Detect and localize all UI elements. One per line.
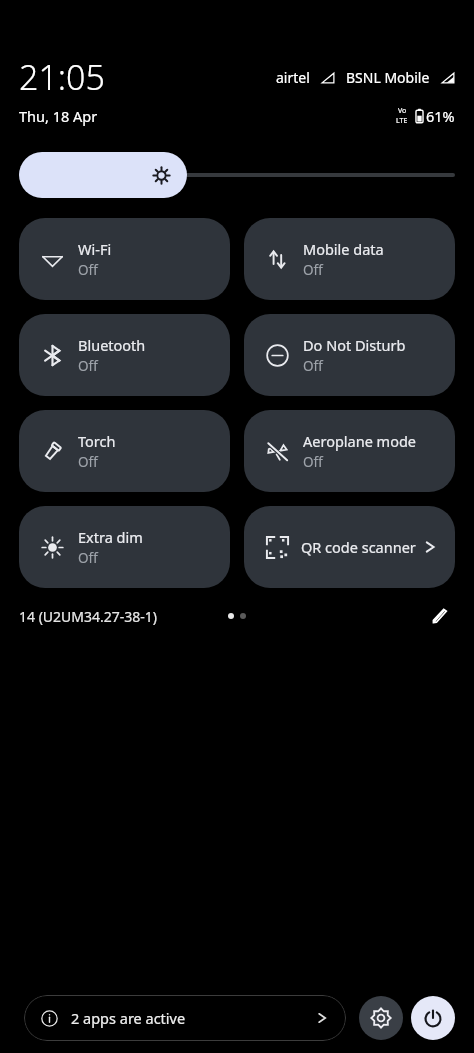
button[interactable]: 2 apps are active <box>24 995 346 1041</box>
staticText: Do Not Disturb <box>303 335 406 355</box>
staticText: 2 apps are active <box>71 1008 314 1028</box>
staticText: 14 (U2UM34.27-38-1) <box>19 607 158 626</box>
staticText: Off <box>78 357 98 375</box>
button[interactable]: Wi-Fi <box>19 218 230 300</box>
staticText: Off <box>78 453 98 471</box>
staticText: Torch <box>78 431 116 451</box>
button[interactable]: Bluetooth <box>19 314 230 396</box>
button[interactable]: Edit tiles <box>423 600 455 632</box>
staticText: Thu, 18 Apr <box>19 106 98 126</box>
staticText: airtel <box>276 68 310 87</box>
staticText: 61% <box>426 106 455 126</box>
button[interactable]: Power <box>411 996 455 1040</box>
staticText: LTE <box>396 116 408 126</box>
staticText: QR code scanner <box>301 537 421 557</box>
staticText: Off <box>78 261 98 279</box>
staticText: Bluetooth <box>78 335 146 355</box>
button[interactable] <box>19 152 455 198</box>
button[interactable]: Settings <box>359 996 403 1040</box>
button[interactable]: Torch <box>19 410 230 492</box>
button[interactable]: Extra dim <box>19 506 230 588</box>
button[interactable]: QR code scanner <box>244 506 455 588</box>
staticText: Off <box>78 549 98 567</box>
button[interactable]: Do Not Disturb <box>244 314 455 396</box>
staticText: Mobile data <box>303 239 384 259</box>
staticText: Off <box>303 261 323 279</box>
staticText: BSNL Mobile <box>346 68 430 87</box>
staticText: Vo <box>398 106 407 116</box>
staticText: 21:05 <box>19 54 105 100</box>
staticText: Wi-Fi <box>78 239 112 259</box>
staticText: Extra dim <box>78 527 143 547</box>
staticText: Off <box>303 357 323 375</box>
button[interactable]: Aeroplane mode <box>244 410 455 492</box>
button[interactable]: Mobile data <box>244 218 455 300</box>
staticText: Aeroplane mode <box>303 431 417 451</box>
staticText: Off <box>303 453 323 471</box>
